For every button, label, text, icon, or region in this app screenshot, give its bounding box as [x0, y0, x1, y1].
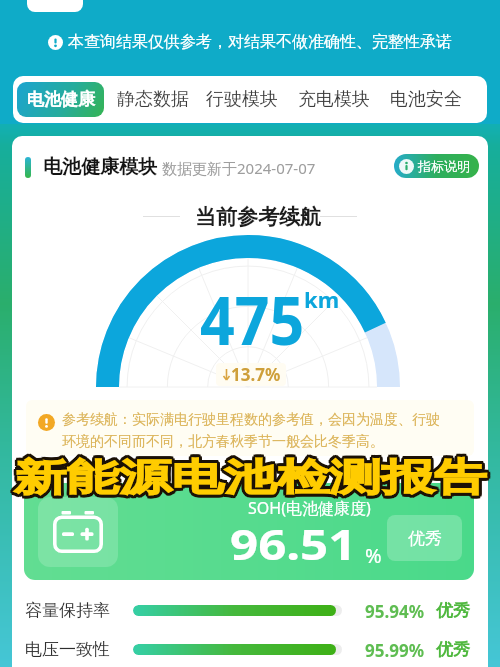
staticText: %: [365, 542, 382, 569]
staticText: 优秀: [408, 528, 442, 549]
staticText: 静态数据: [117, 88, 189, 111]
staticText: 容量保持率: [25, 600, 110, 621]
staticText: 电池安全: [390, 88, 462, 111]
button[interactable]: 充电模块: [290, 76, 378, 123]
button[interactable]: 优秀: [387, 515, 462, 561]
staticText: 新能源电池检测报告: [15, 453, 488, 500]
staticText: 13.7%: [231, 363, 281, 386]
staticText: 475: [200, 274, 305, 364]
staticText: 95.94%: [365, 600, 425, 623]
staticText: 新能源电池检测报告: [13, 457, 485, 504]
staticText: 新能源电池检测报告: [13, 456, 485, 503]
staticText: 新能源电池检测报告: [13, 453, 485, 500]
staticText: 数据更新于2024-07-07: [162, 158, 316, 178]
staticText: 充电模块: [298, 88, 370, 111]
staticText: 新能源电池检测报告: [15, 455, 488, 502]
staticText: 电压一致性: [25, 639, 110, 660]
button[interactable]: 电池健康: [17, 82, 104, 117]
staticText: 新能源电池检测报告: [13, 452, 485, 499]
staticText: 新能源电池检测报告: [13, 451, 485, 498]
staticText: 优秀: [436, 639, 470, 660]
staticText: 指标说明: [418, 158, 470, 174]
staticText: 本查询结果仅供参考，对结果不做准确性、完整性承诺: [68, 32, 452, 52]
button[interactable]: 电池安全: [382, 76, 470, 123]
staticText: 96.51: [230, 516, 357, 572]
staticText: 当前参考续航: [195, 204, 321, 230]
button[interactable]: 静态数据: [109, 76, 197, 123]
staticText: 新能源电池检测报告: [15, 456, 488, 503]
staticText: 新能源电池检测报告: [17, 453, 490, 500]
staticText: 新能源电池检测报告: [13, 456, 485, 503]
staticText: 95.99%: [365, 639, 425, 662]
staticText: SOH(电池健康度): [248, 497, 371, 519]
staticText: 优秀: [436, 600, 470, 621]
staticText: 新能源电池检测报告: [14, 457, 487, 504]
staticText: 电池健康模块: [43, 155, 157, 179]
staticText: km: [304, 284, 340, 314]
staticText: 新能源电池检测报告: [11, 453, 484, 500]
staticText: 参考续航：实际满电行驶里程数的参考值，会因为温度、行驶 环境的不同而不同，北方春…: [62, 411, 440, 450]
staticText: 新能源电池检测报告: [13, 452, 485, 499]
staticText: 电池健康: [27, 89, 95, 110]
button[interactable]: 指标说明: [394, 154, 479, 178]
staticText: 行驶模块: [206, 88, 278, 111]
staticText: 新能源电池检测报告: [15, 452, 488, 499]
staticText: 新能源电池检测报告: [15, 451, 488, 498]
staticText: 新能源电池检测报告: [15, 457, 488, 504]
staticText: 新能源电池检测报告: [13, 455, 485, 502]
staticText: 新能源电池检测报告: [11, 454, 484, 501]
staticText: 新能源电池检测报告: [15, 456, 488, 503]
staticText: 新能源电池检测报告: [14, 451, 487, 498]
staticText: 新能源电池检测报告: [15, 452, 488, 499]
button[interactable]: 行驶模块: [198, 76, 286, 123]
staticText: 新能源电池检测报告: [17, 454, 490, 501]
staticText: 新能源电池检测报告: [17, 455, 490, 502]
staticText: 新能源电池检测报告: [11, 455, 484, 502]
staticText: 新能源电池检测报告: [14, 454, 487, 501]
